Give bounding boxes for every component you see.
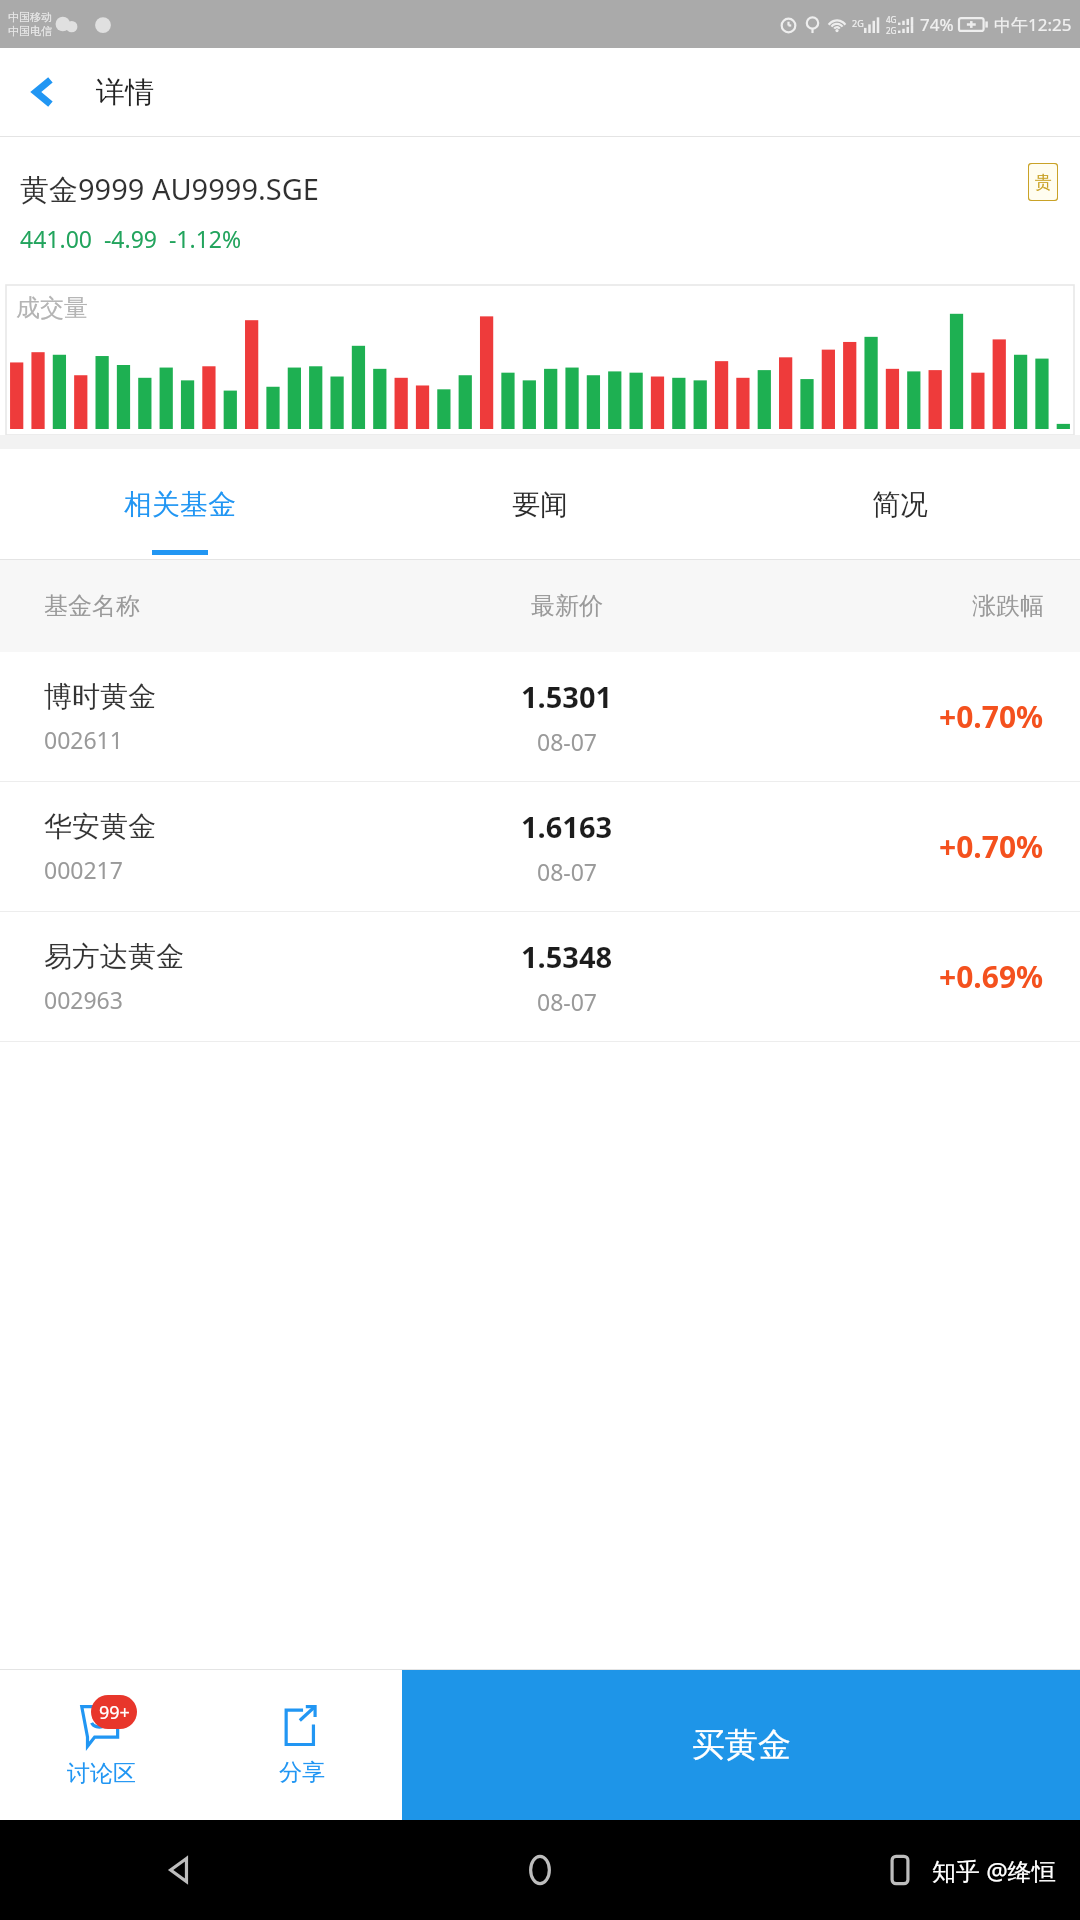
staticText: 002963 bbox=[44, 984, 123, 1015]
staticText: 华安黄金 bbox=[44, 809, 156, 844]
staticText: 黄金9999 AU9999.SGE bbox=[20, 169, 319, 209]
button[interactable]: 要闻 bbox=[360, 449, 720, 559]
staticText: 知乎 @绛恒 bbox=[932, 1854, 1056, 1887]
staticText: 要闻 bbox=[512, 487, 568, 522]
staticText: 08-07 bbox=[537, 986, 598, 1017]
button[interactable]: Back bbox=[0, 1820, 360, 1920]
staticText: 1.6163 bbox=[521, 807, 613, 846]
button[interactable]: 简况 bbox=[720, 449, 1080, 559]
button[interactable]: 博时黄金 bbox=[0, 652, 1080, 781]
staticText: 2G bbox=[852, 17, 864, 29]
staticText: 1.5348 bbox=[521, 937, 613, 976]
staticText: +0.69% bbox=[939, 956, 1044, 997]
staticText: 08-07 bbox=[537, 726, 598, 757]
button[interactable]: Back bbox=[14, 64, 70, 120]
staticText: 1.5301 bbox=[521, 677, 613, 716]
staticText: 成交量 bbox=[16, 293, 88, 323]
staticText: 相关基金 bbox=[124, 487, 236, 522]
staticText: 中国移动 bbox=[8, 10, 52, 24]
staticText: 4G bbox=[886, 14, 897, 25]
staticText: 441.00 -4.99 -1.12% bbox=[20, 223, 242, 254]
staticText: 涨跌幅 bbox=[744, 591, 1044, 621]
button[interactable]: 易方达黄金 bbox=[0, 912, 1080, 1041]
staticText: 分享 bbox=[279, 1758, 325, 1787]
staticText: 中国电信 bbox=[8, 24, 52, 38]
button[interactable]: 买黄金 bbox=[402, 1670, 1080, 1820]
staticText: 08-07 bbox=[537, 856, 598, 887]
staticText: +0.70% bbox=[939, 696, 1044, 737]
staticText: 讨论区 bbox=[67, 1759, 136, 1788]
staticText: +0.70% bbox=[939, 826, 1044, 867]
staticText: 贵 bbox=[1035, 172, 1052, 193]
staticText: 基金名称 bbox=[44, 591, 390, 621]
staticText: 简况 bbox=[872, 487, 928, 522]
staticText: 中午12:25 bbox=[994, 13, 1072, 36]
staticText: 买黄金 bbox=[692, 1724, 791, 1766]
staticText: 博时黄金 bbox=[44, 679, 156, 714]
staticText: 2G bbox=[886, 25, 897, 36]
staticText: 最新价 bbox=[390, 591, 744, 621]
staticText: 详情 bbox=[96, 74, 154, 111]
staticText: 易方达黄金 bbox=[44, 939, 184, 974]
button[interactable]: 分享 bbox=[202, 1670, 402, 1820]
button[interactable]: 99+ bbox=[0, 1670, 202, 1820]
staticText: 74% bbox=[920, 13, 954, 36]
button[interactable]: Recent apps bbox=[720, 1820, 1080, 1920]
button[interactable]: 相关基金 bbox=[0, 449, 360, 559]
button[interactable]: Home bbox=[360, 1820, 720, 1920]
staticText: 99+ bbox=[99, 1700, 130, 1725]
staticText: 002611 bbox=[44, 724, 123, 755]
staticText: 000217 bbox=[44, 854, 123, 885]
button[interactable]: 华安黄金 bbox=[0, 782, 1080, 911]
